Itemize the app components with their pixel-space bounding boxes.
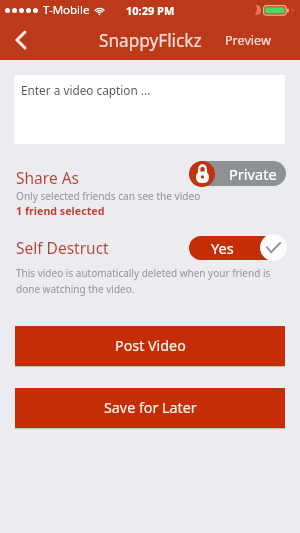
staticText: Enter a video caption ... [21, 82, 151, 98]
button[interactable]: Preview [201, 22, 300, 59]
staticText: 10:29 PM [126, 3, 175, 18]
staticText: Share As [16, 167, 79, 188]
button[interactable]: Post Video [15, 326, 285, 366]
staticText: 1 friend selected [16, 204, 105, 219]
staticText: T-Mobile [43, 2, 90, 18]
staticText: Post Video [115, 336, 186, 355]
staticText: Preview [225, 32, 271, 49]
staticText: Only selected friends can see the video [16, 189, 201, 203]
staticText: Save for Later [104, 398, 197, 417]
staticText: This video is automatically deleted when… [16, 266, 271, 296]
button[interactable]: Enter a video caption ... [14, 75, 285, 144]
button[interactable]: Private [189, 160, 286, 187]
button[interactable]: Yes [189, 234, 287, 261]
staticText: Self Destruct [16, 237, 109, 258]
staticText: Private [229, 164, 277, 184]
button[interactable]: Back [4, 20, 38, 60]
staticText: SnappyFlickz [99, 29, 202, 52]
staticText: Yes [211, 238, 234, 258]
button[interactable]: Save for Later [15, 388, 285, 428]
